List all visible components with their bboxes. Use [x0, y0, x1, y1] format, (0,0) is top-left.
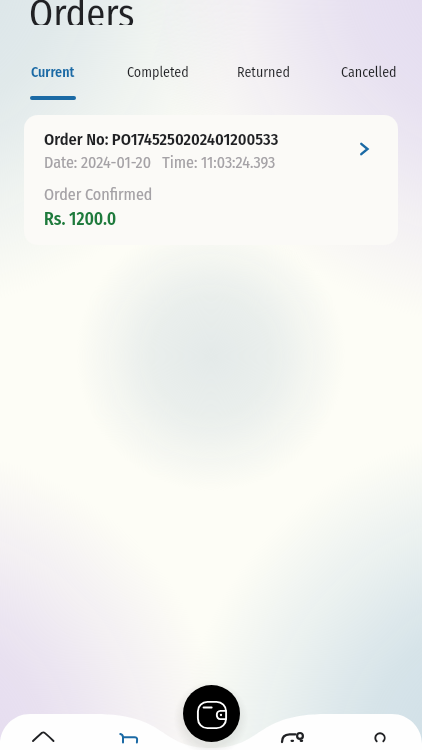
button[interactable]: Wallet — [183, 685, 240, 742]
staticText: Returned — [237, 64, 290, 81]
button[interactable]: Completed — [105, 34, 210, 100]
staticText: Orders — [29, 0, 135, 25]
staticText: Rs. 1200.0 — [44, 209, 117, 230]
button[interactable]: Cancelled — [316, 34, 422, 100]
staticText: Order Confirmed — [44, 185, 153, 204]
button[interactable]: Order No: PO1745250202401200533 — [24, 115, 398, 245]
button[interactable]: Returned — [210, 34, 316, 100]
button[interactable]: Cart — [85, 714, 170, 750]
button[interactable]: Open order details — [356, 141, 372, 157]
staticText: Date: 2024-01-20 Time: 11:03:24.393 — [44, 153, 276, 172]
staticText: Current — [31, 64, 75, 81]
staticText: Completed — [127, 64, 189, 81]
button[interactable]: Profile — [338, 714, 422, 750]
button[interactable]: Current — [0, 34, 105, 100]
staticText: Cancelled — [341, 64, 397, 81]
button[interactable]: Deliveries — [254, 714, 338, 750]
button[interactable]: Home — [0, 714, 85, 750]
staticText: Order No: PO1745250202401200533 — [44, 130, 279, 150]
